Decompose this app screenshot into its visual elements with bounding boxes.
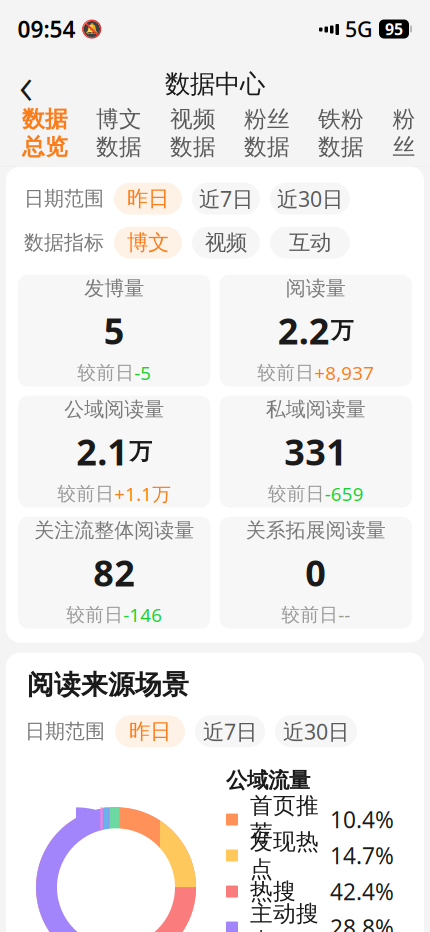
button[interactable]: 视频数据: [156, 111, 230, 165]
staticText: 42.4%: [330, 876, 394, 907]
button[interactable]: 发博量: [18, 275, 210, 387]
button[interactable]: 博文数据: [82, 111, 156, 165]
staticText: 私域阅读量: [266, 397, 366, 422]
staticText: -659: [325, 481, 364, 506]
staticText: 近30日: [277, 184, 343, 213]
button[interactable]: 粉丝数据: [230, 111, 304, 165]
staticText: +1.1万: [114, 481, 171, 506]
staticText: 铁粉数据: [318, 105, 364, 161]
button[interactable]: 昨日: [114, 183, 182, 215]
staticText: 万: [331, 317, 354, 344]
staticText: 发博量: [84, 276, 144, 301]
button[interactable]: 粉丝: [378, 111, 430, 165]
staticText: 331: [284, 428, 347, 475]
staticText: 数据中心: [165, 68, 265, 99]
staticText: 🔕: [80, 19, 102, 39]
button[interactable]: 近30日: [275, 715, 357, 747]
button[interactable]: 返回: [0, 60, 52, 108]
staticText: 阅读来源场景: [27, 669, 189, 701]
button[interactable]: 互动: [270, 227, 350, 259]
staticText: 首页推荐: [250, 792, 319, 847]
button[interactable]: 关系拓展阅读量: [219, 517, 412, 629]
button[interactable]: 私域阅读量: [219, 396, 412, 508]
button[interactable]: 数据总览: [8, 111, 82, 165]
staticText: 14.7%: [330, 840, 394, 871]
staticText: 82: [93, 549, 135, 596]
staticText: 关系拓展阅读量: [246, 518, 386, 543]
staticText: 28.8%: [330, 912, 394, 932]
staticText: 2.1: [76, 428, 128, 475]
staticText: 视频: [205, 229, 247, 256]
staticText: 粉丝: [392, 105, 415, 161]
staticText: 视频数据: [170, 105, 216, 161]
staticText: 10.4%: [330, 804, 394, 835]
staticText: 关注流整体阅读量: [34, 518, 194, 543]
button[interactable]: 近7日: [192, 183, 260, 215]
staticText: 数据总览: [22, 105, 68, 161]
staticText: ‹: [19, 49, 33, 119]
staticText: 发现热点: [250, 828, 319, 883]
staticText: 较前日: [268, 482, 325, 505]
staticText: 粉丝数据: [244, 105, 290, 161]
staticText: 0: [305, 549, 326, 596]
button[interactable]: 昨日: [115, 715, 185, 747]
staticText: +8,937: [314, 360, 374, 385]
staticText: --: [338, 602, 350, 627]
staticText: 昨日: [127, 185, 169, 212]
staticText: 较前日: [281, 603, 338, 626]
button[interactable]: 阅读量: [219, 275, 412, 387]
staticText: 2.2: [278, 307, 330, 354]
staticText: 5G: [345, 15, 373, 43]
button[interactable]: 近7日: [195, 715, 265, 747]
staticText: 近7日: [199, 184, 253, 213]
staticText: 公域流量: [226, 767, 310, 794]
staticText: 较前日: [57, 482, 114, 505]
staticText: 数据指标: [24, 230, 104, 255]
staticText: 近7日: [203, 717, 257, 745]
button[interactable]: 公域阅读量: [18, 396, 210, 508]
staticText: 较前日: [257, 361, 314, 384]
staticText: 互动: [289, 229, 331, 256]
staticText: 日期范围: [25, 719, 105, 744]
staticText: 较前日: [66, 603, 123, 626]
staticText: 公域阅读量: [64, 397, 164, 422]
staticText: 95: [385, 18, 403, 40]
button[interactable]: 视频: [192, 227, 260, 259]
staticText: -5: [134, 360, 151, 385]
button[interactable]: 关注流整体阅读量: [18, 517, 210, 629]
staticText: 阅读量: [286, 276, 346, 301]
staticText: 主动搜索: [250, 900, 319, 932]
button[interactable]: 近30日: [270, 183, 350, 215]
staticText: 博文: [127, 229, 169, 256]
staticText: 万: [129, 438, 152, 465]
staticText: 日期范围: [24, 186, 104, 211]
staticText: 09:54: [17, 14, 75, 44]
staticText: 热搜: [250, 878, 296, 905]
staticText: 博文数据: [96, 105, 142, 161]
staticText: -146: [123, 602, 162, 627]
staticText: 较前日: [77, 361, 134, 384]
button[interactable]: 博文: [114, 227, 182, 259]
button[interactable]: 铁粉数据: [304, 111, 378, 165]
staticText: 5: [104, 307, 125, 354]
staticText: 昨日: [129, 718, 171, 744]
staticText: 近30日: [283, 717, 349, 745]
